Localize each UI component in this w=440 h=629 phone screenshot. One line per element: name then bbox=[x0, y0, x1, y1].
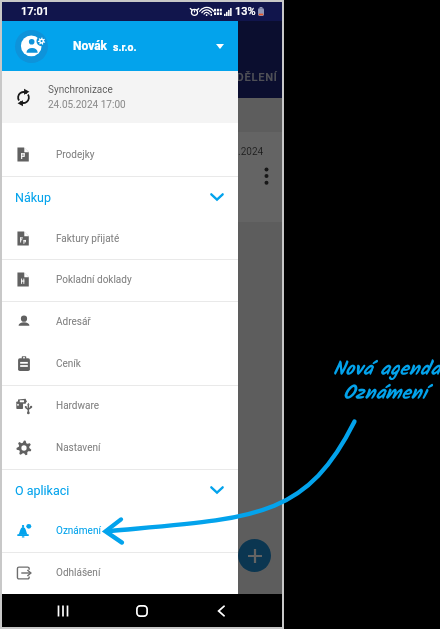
staticText: Hardware bbox=[56, 400, 100, 412]
staticText: Odhlášení bbox=[56, 567, 101, 579]
button[interactable]: Synchronizace bbox=[2, 71, 238, 123]
button[interactable]: More options bbox=[264, 167, 269, 185]
staticText: Oznámení bbox=[56, 525, 101, 537]
button[interactable]: Switch company bbox=[216, 44, 224, 49]
staticText: Oznámení bbox=[343, 378, 427, 409]
other: Collapse bbox=[210, 486, 224, 494]
staticText: Ceník bbox=[56, 358, 81, 370]
staticText: Nastavení bbox=[56, 442, 101, 454]
staticText: s.r.o. bbox=[113, 41, 137, 53]
button[interactable]: Back bbox=[215, 605, 227, 617]
button[interactable]: O aplikaci bbox=[2, 469, 238, 511]
button[interactable]: Oznámení bbox=[2, 510, 238, 552]
staticText: 13% bbox=[235, 5, 256, 18]
button[interactable]: Prodejky bbox=[2, 134, 238, 176]
staticText: Faktury přijaté bbox=[56, 233, 120, 245]
button[interactable]: Odhlášení bbox=[2, 552, 238, 594]
staticText: Prodejky bbox=[56, 149, 95, 161]
staticText: 17:01 bbox=[21, 5, 49, 18]
staticText: 24.05.2024 17:00 bbox=[48, 99, 126, 111]
staticText: Novák bbox=[73, 39, 108, 53]
staticText: Adresář bbox=[56, 316, 91, 328]
button[interactable]: Pokladní doklady bbox=[2, 259, 238, 301]
button[interactable]: Hardware bbox=[2, 385, 238, 427]
button[interactable]: Nastavení bbox=[2, 427, 238, 469]
button[interactable]: Adresář bbox=[2, 301, 238, 343]
staticText: Nákup bbox=[15, 190, 51, 205]
button[interactable]: Home bbox=[136, 605, 148, 617]
button[interactable]: Faktury přijaté bbox=[2, 218, 238, 260]
staticText: Synchronizace bbox=[48, 84, 113, 96]
staticText: SDĚLENÍ bbox=[229, 71, 278, 84]
button[interactable]: Add bbox=[238, 539, 271, 572]
button[interactable]: Nákup bbox=[2, 176, 238, 218]
button[interactable]: Ceník bbox=[2, 343, 238, 385]
staticText: O aplikaci bbox=[15, 483, 70, 498]
button[interactable]: Recents bbox=[57, 605, 69, 617]
staticText: Nová agenda bbox=[333, 354, 440, 385]
button[interactable]: Novák bbox=[2, 21, 238, 71]
staticText: Pokladní doklady bbox=[56, 274, 132, 286]
staticText: 15.05.2024 bbox=[213, 146, 264, 158]
other: Collapse bbox=[210, 193, 224, 201]
